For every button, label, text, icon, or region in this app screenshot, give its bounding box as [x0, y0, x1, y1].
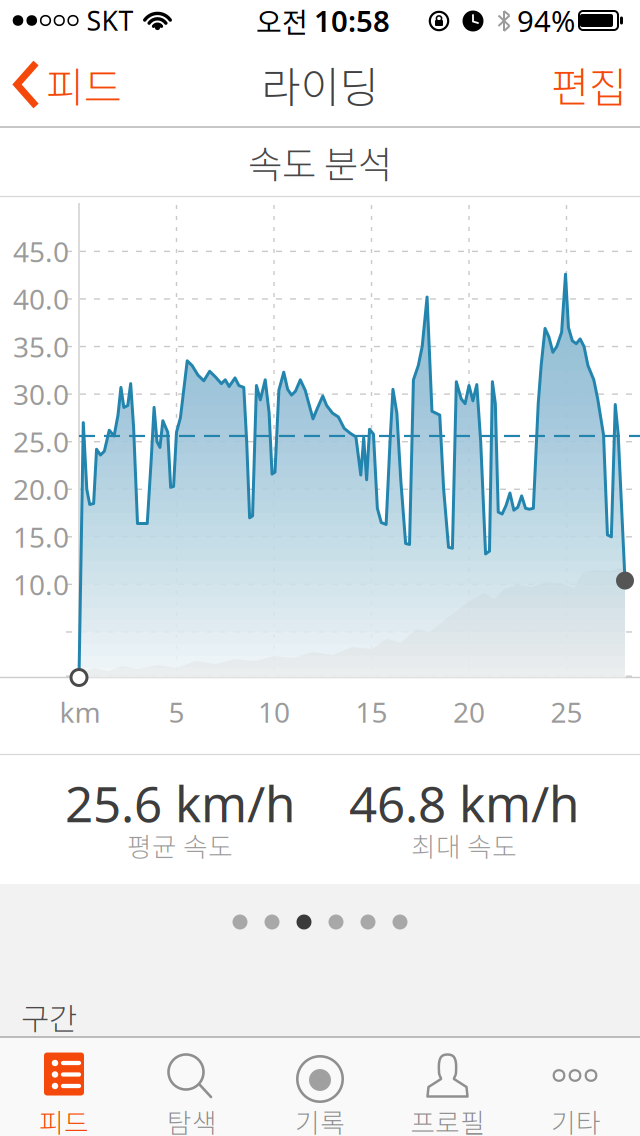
staticText: 35.0	[13, 328, 69, 365]
staticText: 30.0	[13, 375, 69, 413]
staticText: 구간	[21, 995, 77, 1039]
staticText: SKT	[86, 3, 133, 38]
staticText: 10.0	[13, 566, 69, 603]
staticText: 피드	[46, 55, 122, 114]
staticText: 기타	[551, 1102, 601, 1136]
staticText: 10	[258, 693, 290, 731]
staticText: 속도 분석	[248, 135, 392, 189]
staticText: 40.0	[13, 280, 69, 318]
button[interactable]: Back to Feed	[19, 52, 149, 116]
staticText: 10:58	[314, 1, 390, 40]
staticText: 15	[355, 693, 387, 731]
staticText: 편집	[551, 55, 627, 114]
staticText: 라이딩	[261, 54, 378, 115]
staticText: 기록	[295, 1102, 345, 1136]
staticText: 25.6 km/h	[65, 770, 295, 836]
staticText: 25.0	[13, 423, 69, 460]
staticText: 94%	[517, 1, 575, 40]
staticText: 46.8 km/h	[349, 770, 579, 836]
staticText: 프로필	[410, 1102, 485, 1136]
staticText: 최대 속도	[411, 826, 517, 864]
staticText: 평균 속도	[127, 826, 233, 864]
staticText: 오전	[256, 0, 314, 41]
staticText: 탐색	[167, 1102, 217, 1136]
button[interactable]: 피드	[0, 1037, 128, 1136]
button[interactable]: 편집	[544, 54, 634, 114]
button[interactable]: 기록	[256, 1037, 384, 1136]
button[interactable]: 프로필	[384, 1037, 512, 1136]
staticText: 25	[550, 693, 582, 731]
staticText: 5	[168, 693, 184, 731]
staticText: km	[59, 693, 100, 731]
button[interactable]: 탐색	[128, 1037, 256, 1136]
button[interactable]: 기타	[512, 1037, 640, 1136]
staticText: 20.0	[13, 471, 69, 508]
staticText: 피드	[39, 1102, 89, 1136]
staticText: 15.0	[13, 518, 69, 555]
staticText: 20	[453, 693, 485, 731]
staticText: 45.0	[13, 233, 69, 270]
